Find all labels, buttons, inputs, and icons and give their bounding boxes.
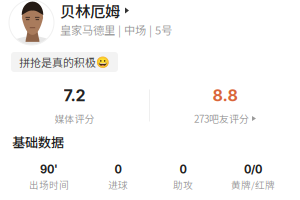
staticText: 90': [40, 164, 58, 175]
staticText: 273吧友评分: [194, 113, 249, 124]
staticText: 8.8: [212, 88, 237, 103]
staticText: 皇家马德里 | 中场 | 5号: [60, 23, 172, 36]
button[interactable]: 7.2: [0, 88, 149, 123]
staticText: 0: [114, 164, 121, 175]
button[interactable]: 拼抢是真的积极😀: [0, 52, 300, 72]
staticText: 拼抢是真的积极😀: [19, 56, 110, 68]
staticText: 0: [179, 164, 186, 175]
staticText: 0/0: [244, 164, 262, 175]
button[interactable]: 8.8: [150, 88, 300, 123]
staticText: 出场时间: [29, 179, 69, 190]
staticText: 基础数据: [12, 134, 64, 149]
staticText: 媒体评分: [54, 113, 94, 124]
staticText: 7.2: [63, 88, 85, 103]
button[interactable]: 贝林厄姆: [0, 0, 300, 45]
staticText: 黄牌/红牌: [231, 179, 275, 190]
staticText: 助攻: [173, 179, 193, 190]
staticText: 进球: [108, 179, 128, 190]
staticText: 贝林厄姆: [60, 2, 120, 19]
